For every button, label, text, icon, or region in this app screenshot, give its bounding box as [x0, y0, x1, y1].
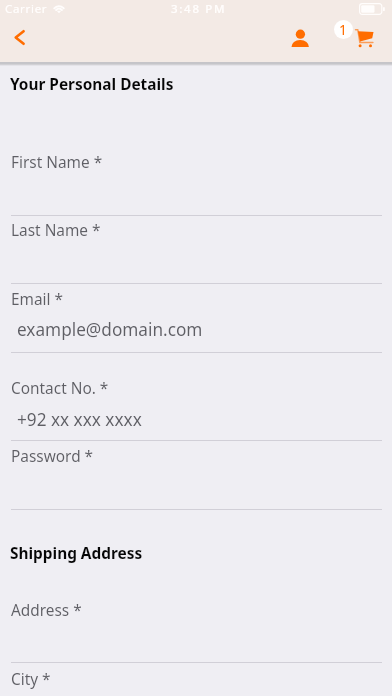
staticText: Email * [11, 289, 64, 310]
staticText: Password * [11, 446, 94, 467]
button[interactable]: City * [0, 663, 392, 696]
button[interactable]: Address * [0, 593, 392, 663]
staticText: Last Name * [11, 220, 101, 241]
staticText: Address * [11, 600, 82, 621]
button[interactable]: Back [0, 17, 39, 57]
button[interactable]: Cart [332, 14, 384, 52]
staticText: 1 [339, 20, 348, 39]
staticText: First Name * [11, 152, 103, 173]
staticText: Contact No. * [11, 378, 109, 399]
staticText: Shipping Address [10, 543, 143, 564]
button[interactable]: Password * [0, 441, 392, 510]
button[interactable]: Last Name * [0, 216, 392, 284]
staticText: 3:48 PM [171, 1, 227, 17]
button[interactable]: Email * [0, 284, 392, 353]
staticText: +92 xx xxx xxxx [17, 408, 142, 431]
staticText: example@domain.com [17, 318, 203, 341]
staticText: Carrier [5, 1, 48, 17]
staticText: City * [11, 669, 51, 690]
button[interactable]: First Name * [0, 146, 392, 216]
button[interactable]: Contact No. * [0, 353, 392, 441]
staticText: Your Personal Details [10, 74, 174, 95]
button[interactable]: Account [280, 19, 320, 57]
